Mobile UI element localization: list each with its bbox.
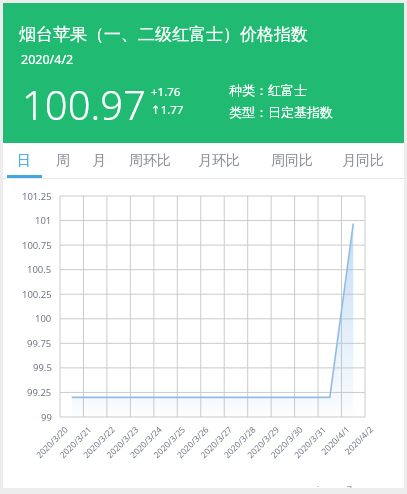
staticText: +1.76 [151,84,181,100]
staticText: 周同比 [271,152,313,170]
staticText: 日 [17,152,31,170]
staticText: 烟台苹果（一、二级红富士）价格指数 [19,24,308,45]
button[interactable]: 周 [50,143,76,179]
button[interactable]: 日 [11,143,37,179]
button[interactable]: 月环比 [191,143,247,179]
staticText: 类型：日定基指数 [229,104,333,120]
button[interactable]: 月同比 [335,143,391,179]
staticText: 种类：红富士 [229,82,307,98]
button[interactable]: 周同比 [264,143,320,179]
button[interactable]: 月 [86,143,112,179]
staticText: 2020/4/2 [21,51,74,68]
staticText: 周 [56,152,70,170]
staticText: 周环比 [129,152,171,170]
staticText: 100.97 [22,77,146,131]
staticText: 月同比 [342,152,384,170]
staticText: 月 [92,152,106,170]
staticText: ↑1.77 [151,102,184,118]
staticText: 月环比 [198,152,240,170]
button[interactable]: 周环比 [122,143,178,179]
